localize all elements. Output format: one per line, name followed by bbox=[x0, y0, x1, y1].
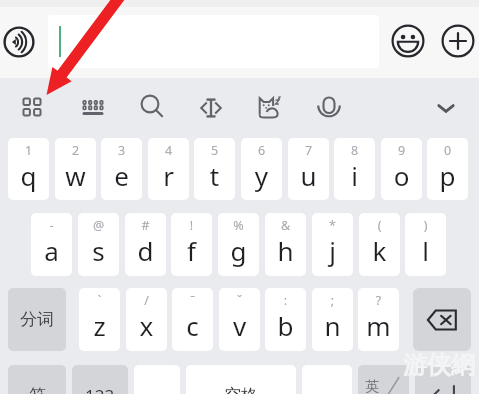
button[interactable]: * bbox=[312, 213, 353, 276]
staticText: x bbox=[126, 308, 167, 343]
staticText: s bbox=[78, 233, 119, 268]
staticText: : bbox=[265, 292, 306, 309]
button[interactable]: Voice input bbox=[3, 26, 35, 58]
staticText: % bbox=[218, 217, 259, 234]
staticText: 游侠網 bbox=[403, 350, 475, 380]
staticText: c bbox=[172, 308, 213, 343]
button[interactable]: 6 bbox=[241, 138, 282, 200]
staticText: p bbox=[427, 158, 468, 193]
button[interactable]: ) bbox=[405, 213, 446, 276]
staticText: 英 bbox=[365, 378, 379, 394]
staticText: @ bbox=[78, 217, 119, 234]
staticText: v bbox=[219, 308, 260, 343]
button[interactable]: # bbox=[125, 213, 166, 276]
button[interactable]: ? bbox=[358, 288, 399, 351]
staticText: f bbox=[171, 233, 212, 268]
staticText: k bbox=[359, 233, 400, 268]
staticText: h bbox=[265, 233, 306, 268]
button[interactable]: ˇ bbox=[219, 288, 260, 351]
staticText: 符 bbox=[29, 385, 46, 394]
button[interactable]: 空格 bbox=[186, 365, 296, 394]
button[interactable]: Voice bbox=[313, 92, 345, 124]
button[interactable]: % bbox=[218, 213, 259, 276]
staticText: * bbox=[312, 217, 353, 234]
button[interactable]: ˋ bbox=[79, 288, 120, 351]
staticText: 空格 bbox=[224, 385, 258, 394]
staticText: 0 bbox=[427, 142, 468, 159]
button[interactable]: ( bbox=[359, 213, 400, 276]
button[interactable]: 2 bbox=[55, 138, 96, 200]
button[interactable]: / bbox=[126, 288, 167, 351]
button[interactable]: Move cursor bbox=[195, 92, 227, 124]
button[interactable]: Enter bbox=[415, 365, 471, 394]
staticText: i bbox=[334, 158, 375, 193]
staticText: ? bbox=[358, 292, 399, 309]
button[interactable]: 9 bbox=[381, 138, 422, 200]
button[interactable]: Stickers bbox=[254, 92, 286, 124]
staticText: a bbox=[31, 233, 72, 268]
staticText: ( bbox=[359, 217, 400, 234]
staticText: l bbox=[405, 233, 446, 268]
button[interactable]: 8 bbox=[334, 138, 375, 200]
button[interactable]: 4 bbox=[148, 138, 189, 200]
staticText: / bbox=[126, 292, 167, 309]
staticText: 3 bbox=[101, 142, 142, 159]
button[interactable]: Language toggle bbox=[358, 365, 409, 394]
button[interactable]: 0 bbox=[427, 138, 468, 200]
staticText: 5 bbox=[194, 142, 235, 159]
staticText: 8 bbox=[334, 142, 375, 159]
staticText: d bbox=[125, 233, 166, 268]
staticText: o bbox=[381, 158, 422, 193]
button[interactable]: 1 bbox=[8, 138, 49, 200]
staticText: q bbox=[8, 158, 49, 193]
button[interactable]: Collapse keyboard bbox=[430, 92, 462, 124]
staticText: 分词 bbox=[20, 309, 54, 330]
staticText: 123 bbox=[85, 384, 115, 394]
staticText: w bbox=[55, 158, 96, 193]
staticText: u bbox=[288, 158, 329, 193]
staticText: ˇ bbox=[219, 292, 260, 309]
staticText: ˉ bbox=[172, 292, 213, 309]
staticText: 1 bbox=[8, 142, 49, 159]
button[interactable]: 分词 bbox=[8, 288, 66, 351]
staticText: 2 bbox=[55, 142, 96, 159]
button[interactable]: ; bbox=[312, 288, 353, 351]
button[interactable]: 7 bbox=[288, 138, 329, 200]
button[interactable]: : bbox=[265, 288, 306, 351]
staticText: 7 bbox=[288, 142, 329, 159]
button[interactable]: 5 bbox=[194, 138, 235, 200]
button[interactable]: Add bbox=[441, 24, 475, 58]
button[interactable]: Backspace bbox=[413, 288, 471, 351]
staticText: t bbox=[194, 158, 235, 193]
staticText: g bbox=[218, 233, 259, 268]
button[interactable]: ˉ bbox=[172, 288, 213, 351]
button[interactable]: Keyboard layouts bbox=[16, 91, 48, 123]
button[interactable]: 3 bbox=[101, 138, 142, 200]
button[interactable]: Keyboard bbox=[77, 92, 109, 124]
button[interactable]: - bbox=[31, 213, 72, 276]
button[interactable]: ! bbox=[171, 213, 212, 276]
staticText: n bbox=[312, 308, 353, 343]
staticText: r bbox=[148, 158, 189, 193]
staticText: # bbox=[125, 217, 166, 234]
staticText: j bbox=[312, 233, 353, 268]
staticText: z bbox=[79, 308, 120, 343]
button[interactable] bbox=[48, 15, 379, 68]
staticText: y bbox=[241, 158, 282, 193]
button[interactable]: 符 bbox=[8, 365, 66, 394]
staticText: ! bbox=[171, 217, 212, 234]
button[interactable]: Search bbox=[136, 90, 168, 122]
staticText: & bbox=[265, 217, 306, 234]
button[interactable]: @ bbox=[78, 213, 119, 276]
button[interactable]: Emoji bbox=[391, 24, 425, 58]
staticText: ˋ bbox=[79, 292, 120, 309]
button[interactable]: & bbox=[265, 213, 306, 276]
staticText: b bbox=[265, 308, 306, 343]
staticText: ) bbox=[405, 217, 446, 234]
button[interactable]: 123 bbox=[72, 365, 128, 394]
staticText: 9 bbox=[381, 142, 422, 159]
